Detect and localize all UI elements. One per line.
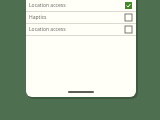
button[interactable]: Location access [26, 0, 136, 11]
staticText: Location access [29, 26, 125, 33]
button[interactable]: Location access [26, 24, 136, 35]
other: Drag handle [68, 91, 94, 93]
staticText: Haptics [29, 14, 125, 21]
staticText: Location access [29, 2, 125, 9]
button[interactable]: Unchecked [125, 26, 132, 33]
button[interactable]: Checked [125, 2, 132, 9]
button[interactable]: Unchecked [125, 14, 132, 21]
button[interactable]: Haptics [26, 12, 136, 23]
